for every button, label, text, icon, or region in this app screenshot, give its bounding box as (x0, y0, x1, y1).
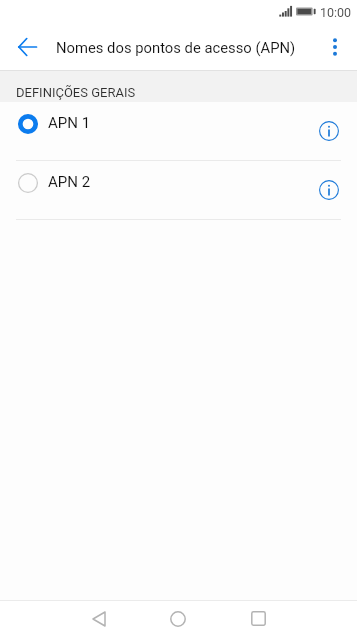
button[interactable]: APN 2 (0, 161, 357, 219)
button[interactable]: Recents (234, 601, 282, 636)
staticText: APN 1 (48, 114, 91, 132)
staticText: DEFINIÇÕES GERAIS (16, 85, 136, 100)
button[interactable]: Details for APN 2 (306, 161, 352, 219)
button[interactable]: More options (313, 25, 357, 69)
button[interactable]: Details for APN 1 (306, 102, 352, 160)
button[interactable]: Home (154, 601, 202, 636)
staticText: 10:00 (320, 5, 352, 20)
staticText: APN 2 (48, 173, 91, 191)
staticText: Nomes dos pontos de acesso (APN) (56, 39, 296, 56)
button[interactable]: Back (0, 24, 54, 70)
button[interactable]: Back (75, 601, 123, 636)
button[interactable]: APN 1 (0, 102, 357, 160)
